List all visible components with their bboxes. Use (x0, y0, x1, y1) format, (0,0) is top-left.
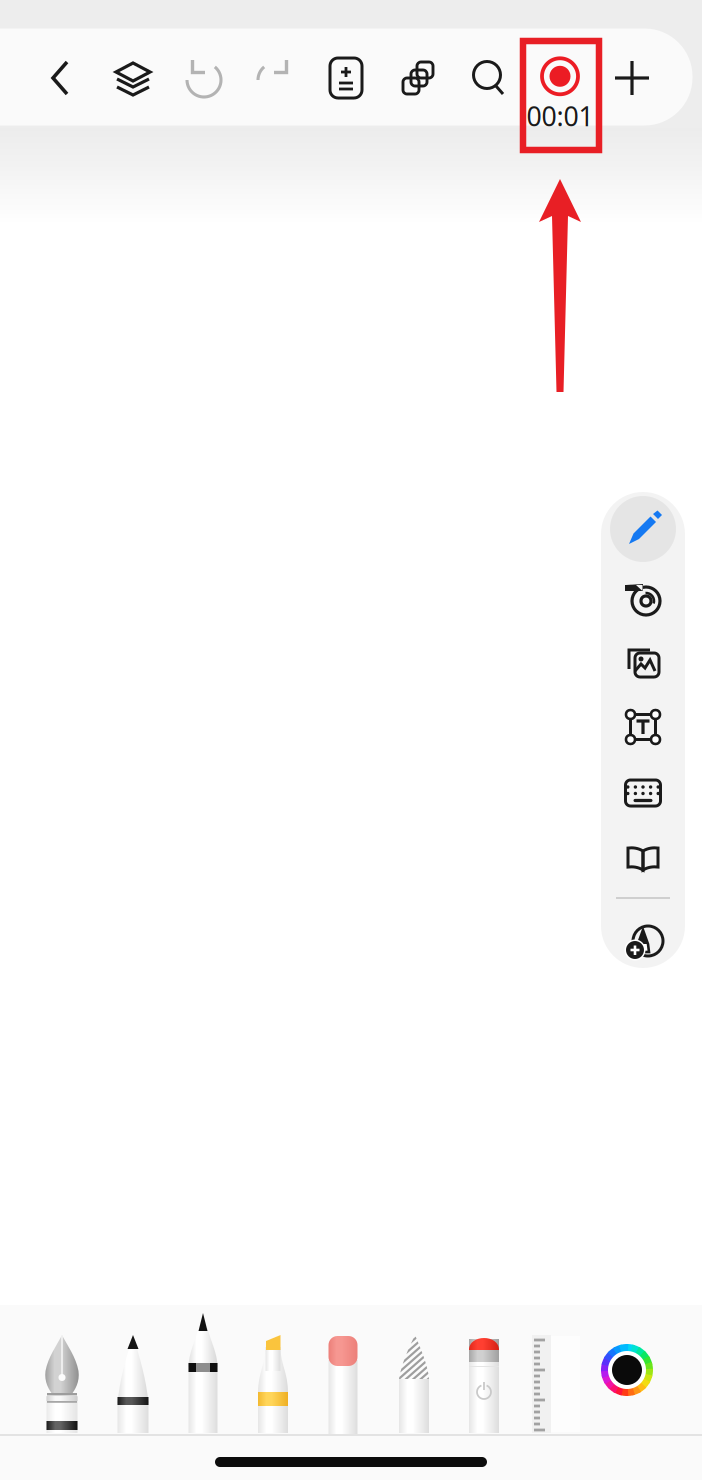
button[interactable]: Add (599, 33, 665, 123)
button[interactable]: Add tool (605, 909, 681, 971)
button[interactable]: Pencil (111, 1335, 155, 1433)
button[interactable]: Search (456, 33, 522, 123)
button[interactable]: Colour (601, 1344, 653, 1396)
button[interactable]: Highlighter (251, 1335, 295, 1433)
button[interactable]: Marker (181, 1313, 225, 1433)
button[interactable]: Electric eraser (462, 1336, 506, 1433)
button[interactable]: Reading mode (605, 828, 681, 890)
button[interactable]: Record (524, 55, 596, 133)
button[interactable]: Sticker (605, 564, 681, 626)
staticText: 00:01 (526, 98, 593, 134)
button[interactable]: Insert image (605, 630, 681, 692)
button[interactable]: Duplicate page (385, 33, 451, 123)
button[interactable]: Fountain pen (40, 1335, 84, 1433)
button[interactable]: Back (32, 33, 92, 123)
button[interactable]: Pen (605, 498, 681, 560)
button[interactable]: Keyboard (605, 762, 681, 824)
button[interactable]: Redo (242, 33, 308, 123)
button[interactable]: Text box (605, 696, 681, 758)
button[interactable]: Crayon (392, 1335, 436, 1433)
button[interactable]: Ruler (532, 1335, 580, 1433)
button[interactable]: Layers (100, 33, 166, 123)
button[interactable]: Page settings (313, 33, 379, 123)
button[interactable]: Eraser (321, 1336, 365, 1433)
button[interactable]: Undo (171, 33, 237, 123)
